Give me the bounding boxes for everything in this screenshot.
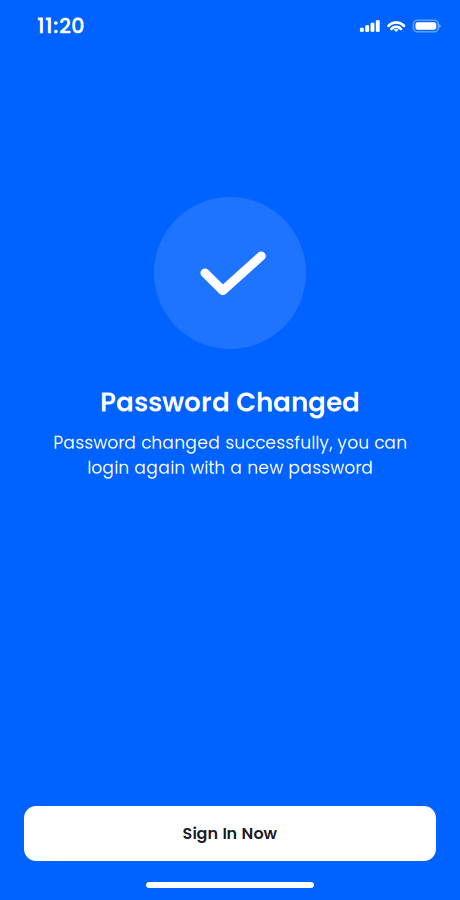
staticText: Password changed successfully, you can l… xyxy=(53,431,407,480)
staticText: 11:20 xyxy=(37,11,85,41)
staticText: Sign In Now xyxy=(182,822,277,845)
button[interactable]: Sign In Now xyxy=(24,806,436,861)
staticText: Password Changed xyxy=(100,384,360,421)
